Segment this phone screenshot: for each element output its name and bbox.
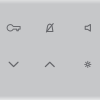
button[interactable]: Unlock	[0, 14, 29, 42]
button[interactable]: Brightness	[73, 50, 100, 78]
button[interactable]: Increase	[35, 50, 65, 78]
button[interactable]: Volume	[73, 14, 100, 42]
button[interactable]: Silent mode	[35, 14, 65, 42]
button[interactable]: Decrease	[0, 50, 29, 78]
